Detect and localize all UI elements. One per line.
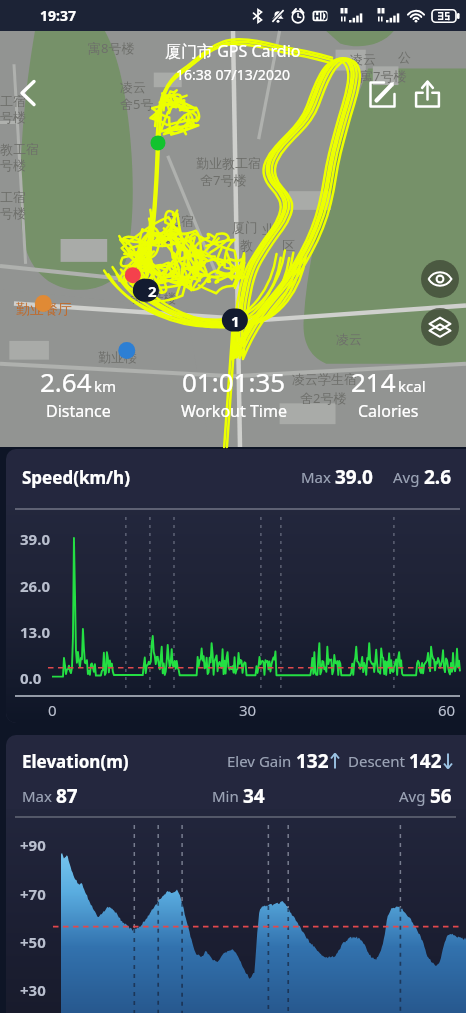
- staticText: 214: [351, 364, 396, 399]
- staticText: 16:38 07/13/2020: [176, 65, 290, 84]
- staticText: 60: [438, 700, 456, 720]
- staticText: Avg: [399, 786, 430, 806]
- staticText: 34: [243, 783, 265, 809]
- staticText: 厦门市 GPS Cardio: [165, 40, 301, 62]
- staticText: 凌云学生宿: [292, 371, 357, 387]
- staticText: 业: [262, 221, 275, 237]
- staticText: Elev Gain: [227, 751, 296, 771]
- staticText: Descent: [348, 751, 409, 771]
- staticText: Workout Time: [181, 400, 287, 422]
- staticText: 19:37: [40, 6, 76, 25]
- staticText: 号楼: [0, 109, 26, 125]
- staticText: 1: [231, 311, 240, 331]
- staticText: Elevation(m): [22, 750, 129, 773]
- staticText: 0: [48, 700, 57, 720]
- staticText: Max: [301, 467, 335, 487]
- staticText: 2: [148, 281, 157, 301]
- staticText: 舍2号楼: [300, 389, 347, 407]
- staticText: km: [94, 376, 117, 396]
- staticText: 公: [398, 49, 411, 65]
- staticText: +30: [20, 980, 46, 1000]
- staticText: 舍5号: [120, 95, 154, 113]
- staticText: 凌云: [350, 51, 376, 67]
- staticText: 勤业: [128, 273, 154, 289]
- staticText: 勤业楼: [98, 349, 137, 365]
- staticText: +90: [20, 835, 46, 855]
- staticText: Speed(km/h): [22, 466, 130, 489]
- staticText: 0.0: [20, 668, 42, 688]
- staticText: 工宿: [0, 93, 26, 109]
- button[interactable]: Back: [6, 71, 50, 115]
- staticText: 号楼: [0, 205, 26, 221]
- staticText: 勤业餐厅: [16, 301, 72, 319]
- staticText: 寓7号楼: [360, 67, 407, 85]
- staticText: Max: [22, 786, 56, 806]
- staticText: Avg: [393, 467, 424, 487]
- button[interactable]: Map layers: [421, 308, 459, 346]
- staticText: 教: [240, 237, 253, 253]
- staticText: kcal: [398, 376, 426, 396]
- staticText: 2.6: [424, 464, 452, 490]
- staticText: 凌云: [120, 79, 146, 95]
- button[interactable]: Toggle markers: [421, 260, 459, 298]
- staticText: 教工宿: [0, 141, 39, 157]
- staticText: 13.0: [20, 622, 50, 642]
- staticText: 01:01:35: [182, 364, 286, 399]
- staticText: Calories: [358, 400, 419, 422]
- staticText: 舍5号楼: [130, 289, 177, 307]
- staticText: 楼: [160, 229, 173, 245]
- staticText: Distance: [46, 400, 111, 422]
- staticText: 勤业教工宿: [196, 155, 261, 171]
- staticText: 39.0: [20, 529, 50, 549]
- staticText: 工宿: [0, 189, 26, 205]
- staticText: 号楼: [0, 157, 26, 173]
- staticText: Min: [212, 786, 243, 806]
- staticText: +70: [20, 884, 46, 904]
- staticText: +50: [20, 932, 46, 952]
- staticText: 工宿: [168, 213, 194, 229]
- staticText: 87: [56, 783, 78, 809]
- staticText: 区: [282, 237, 295, 253]
- staticText: 凌云: [336, 331, 362, 347]
- staticText: 30: [239, 700, 257, 720]
- staticText: 56: [430, 783, 452, 809]
- staticText: 2.64: [40, 364, 92, 399]
- staticText: 132: [296, 748, 329, 774]
- staticText: 142: [409, 748, 442, 774]
- staticText: 39.0: [335, 464, 373, 490]
- staticText: 26.0: [20, 576, 50, 596]
- staticText: 厦门: [232, 219, 258, 235]
- staticText: 寓8号楼: [88, 39, 135, 57]
- staticText: 舍7号楼: [200, 171, 247, 189]
- button[interactable]: Edit: [360, 72, 405, 117]
- button[interactable]: Share: [405, 72, 450, 117]
